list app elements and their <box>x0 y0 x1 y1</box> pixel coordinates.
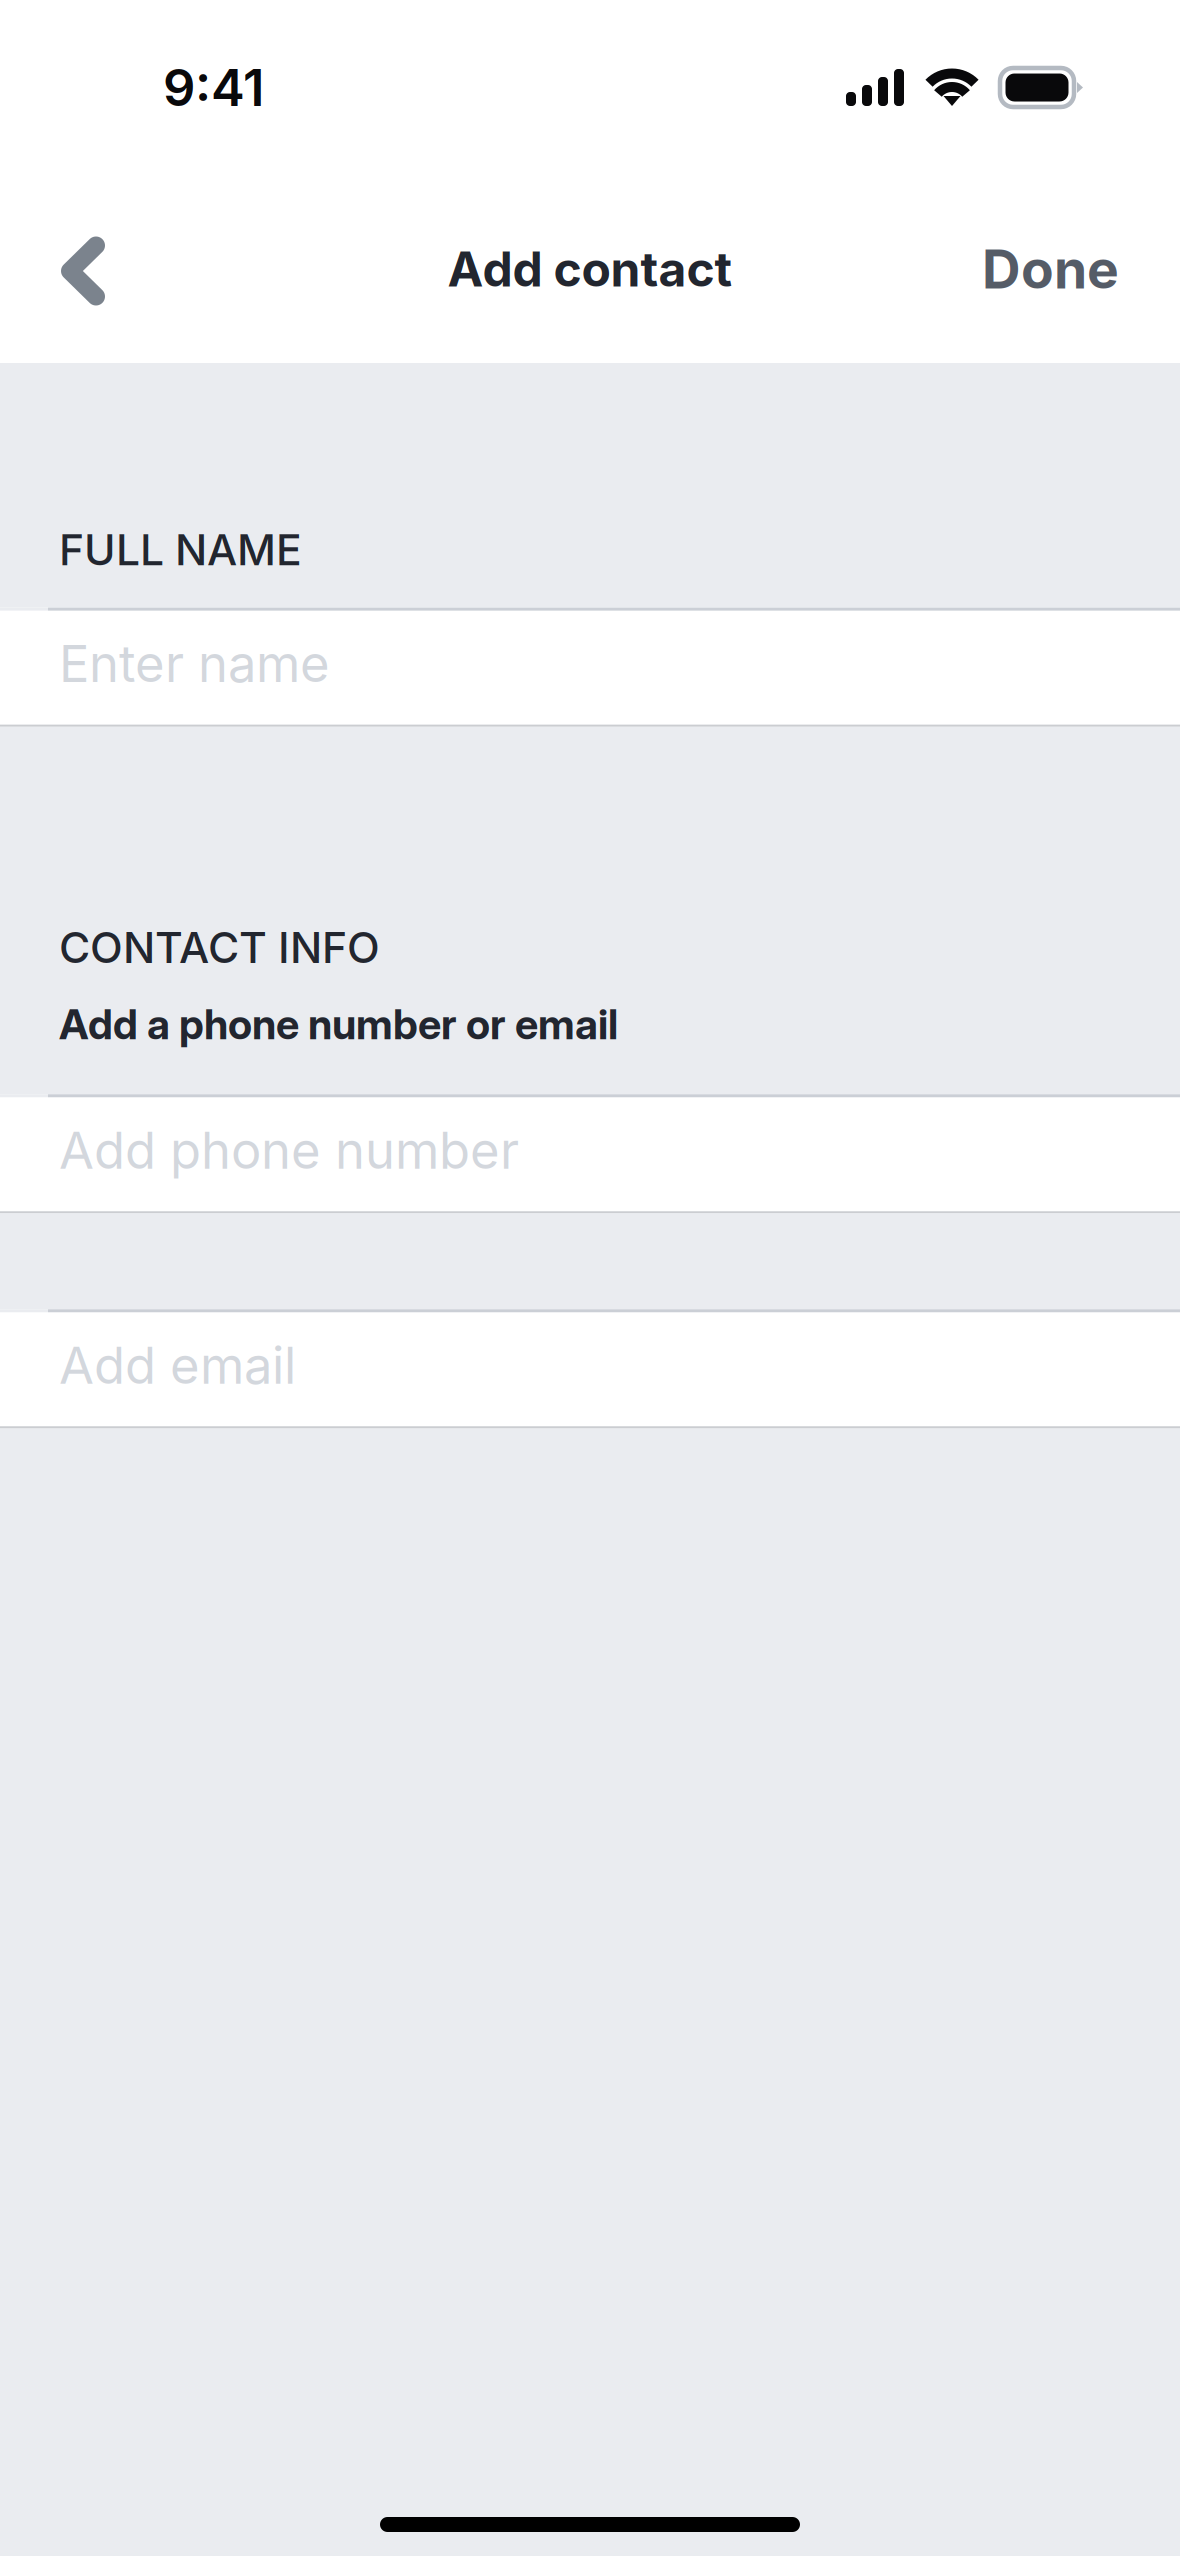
staticText: Add contact <box>447 240 732 298</box>
button[interactable]: Back <box>28 199 138 339</box>
staticText: Enter name <box>59 633 330 694</box>
staticText: Add email <box>59 1335 296 1396</box>
button[interactable]: Add email <box>0 1309 1180 1428</box>
staticText: Add phone number <box>59 1120 519 1181</box>
button[interactable]: Done <box>966 199 1135 339</box>
staticText: Done <box>982 237 1119 301</box>
staticText: FULL NAME <box>59 524 302 576</box>
staticText: CONTACT INFO <box>59 922 380 973</box>
button[interactable]: Add phone number <box>0 1094 1180 1213</box>
staticText: 9:41 <box>163 57 264 118</box>
staticText: Add a phone number or email <box>59 999 618 1049</box>
button[interactable]: Enter name <box>0 608 1180 727</box>
